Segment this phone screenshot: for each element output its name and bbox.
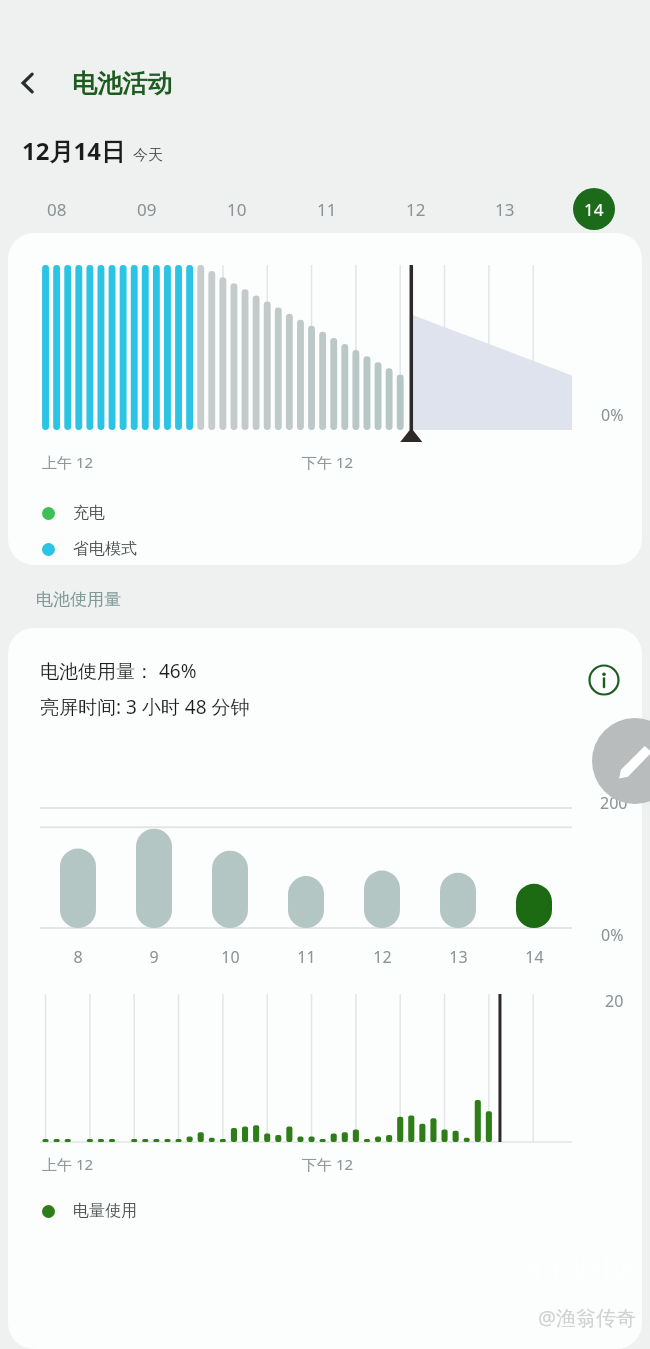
staticText: 电池使用量： 46% [40,658,197,684]
button[interactable]: 13 [460,185,549,233]
staticText: 今天 [133,146,163,165]
staticText: 上午 12 [42,452,94,472]
button[interactable]: Edit [592,718,650,804]
staticText: @渔翁传奇 [538,1304,636,1331]
button[interactable]: 省电模式 [42,534,642,564]
button[interactable]: 09 [102,185,192,233]
staticText: 下午 12 [302,1154,354,1174]
staticText: 20 [605,990,624,1012]
button[interactable]: 电量使用 [42,1196,642,1226]
button[interactable]: 12 [371,185,460,233]
staticText: 8 [73,946,83,968]
staticText: 12月14日 [22,134,125,167]
button[interactable]: 0% [8,233,642,565]
button[interactable]: 14 [549,185,638,233]
staticText: 省电模式 [73,539,137,559]
staticText: 充电 [73,503,105,523]
staticText: 08 [47,198,67,221]
staticText: 12 [373,946,392,968]
button[interactable]: 充电 [42,498,642,528]
staticText: 14 [525,946,544,968]
staticText: 10 [221,946,240,968]
staticText: 电量使用 [73,1201,137,1221]
staticText: 11 [317,198,337,221]
staticText: 13 [449,946,468,968]
staticText: 上午 12 [42,1154,94,1174]
staticText: 亮屏时间: 3 小时 48 分钟 [40,694,250,720]
staticText: 下午 12 [302,452,354,472]
button[interactable]: Info [584,660,624,700]
staticText: 0% [601,404,624,426]
staticText: 14 [584,198,604,221]
button[interactable]: 08 [12,185,102,233]
staticText: 09 [137,198,157,221]
staticText: 11 [297,946,316,968]
staticText: 0% [601,924,624,946]
staticText: 12 [406,198,426,221]
staticText: 电池使用量 [36,589,121,610]
button[interactable]: 10 [192,185,282,233]
staticText: 200 [600,792,628,814]
staticText: 电池活动 [72,68,172,99]
staticText: 10 [227,198,247,221]
staticText: 13 [495,198,515,221]
button[interactable]: 11 [282,185,371,233]
button[interactable]: Back [0,52,56,114]
staticText: 9 [149,946,159,968]
